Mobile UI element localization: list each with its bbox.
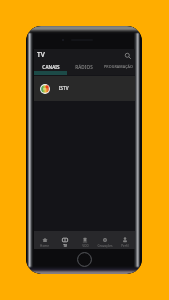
staticText: Gravações [97, 244, 113, 248]
staticText: Home [40, 244, 49, 248]
button[interactable]: CANAIS [34, 62, 67, 75]
staticText: TV [37, 50, 45, 59]
staticText: RÁDIOS [75, 64, 93, 70]
staticText: CANAIS [42, 64, 60, 70]
button[interactable]: ISTV [34, 76, 135, 101]
button[interactable]: Gravações [95, 231, 115, 249]
staticText: ISTV [59, 85, 69, 91]
staticText: Perfil [121, 244, 129, 248]
button[interactable]: TV [55, 231, 75, 249]
staticText: TV [63, 244, 67, 248]
button[interactable]: Perfil [115, 231, 135, 249]
button[interactable]: Search [122, 50, 133, 61]
button[interactable]: RÁDIOS [67, 62, 101, 75]
staticText: VOD [82, 244, 89, 248]
button[interactable]: VOD [75, 231, 95, 249]
button[interactable]: Home [34, 231, 55, 249]
button[interactable]: PROGRAMAÇÃO [101, 62, 135, 75]
staticText: PROGRAMAÇÃO [104, 64, 133, 69]
